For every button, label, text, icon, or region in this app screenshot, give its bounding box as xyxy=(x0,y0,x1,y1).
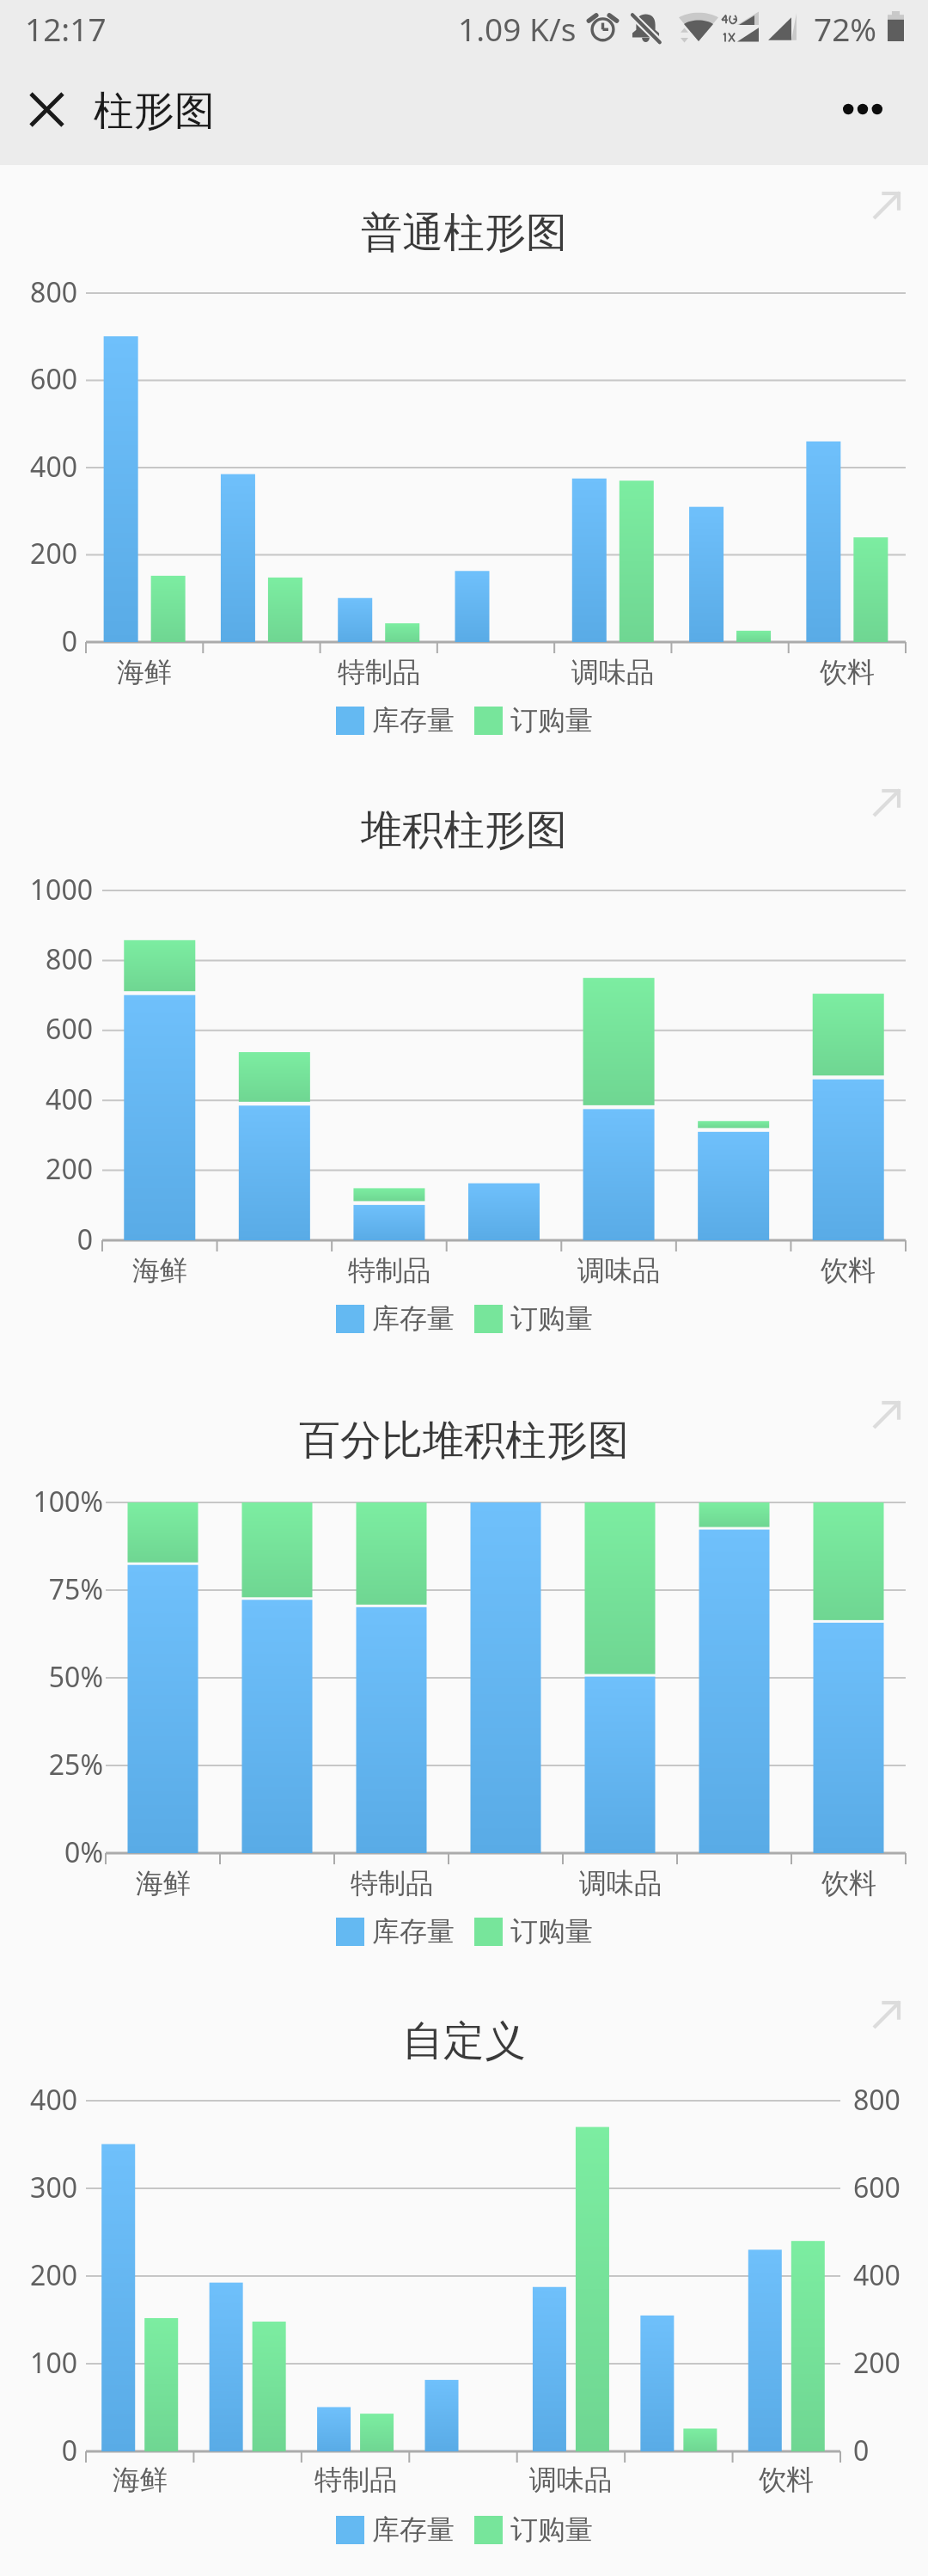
staticText: 1.09 K/s xyxy=(458,7,577,50)
button[interactable]: Close xyxy=(0,53,93,165)
staticText: 堆积柱形图 xyxy=(0,805,928,856)
staticText: 海鲜 xyxy=(76,655,213,689)
staticText: 库存量 xyxy=(372,2512,455,2547)
button[interactable]: 库存量 xyxy=(336,1914,455,1949)
staticText: 饮料 xyxy=(779,1253,917,1288)
staticText: 库存量 xyxy=(372,703,455,737)
staticText: 0 xyxy=(0,2432,77,2469)
staticText: 订购量 xyxy=(510,2512,593,2547)
staticText: 50% xyxy=(0,1658,103,1696)
staticText: 柱形图 xyxy=(94,86,215,137)
staticText: 200 xyxy=(0,2256,77,2294)
staticText: 300 xyxy=(0,2169,77,2206)
staticText: 0 xyxy=(0,622,77,660)
button[interactable]: 订购量 xyxy=(474,1301,593,1336)
button[interactable]: Expand chart xyxy=(860,775,913,829)
staticText: 400 xyxy=(0,448,77,486)
button[interactable]: 订购量 xyxy=(474,2512,593,2547)
staticText: 200 xyxy=(0,1150,93,1188)
staticText: 饮料 xyxy=(780,1866,918,1900)
staticText: 海鲜 xyxy=(91,1253,229,1288)
staticText: 饮料 xyxy=(778,655,916,689)
staticText: 600 xyxy=(0,360,77,398)
button[interactable]: 库存量 xyxy=(336,703,455,737)
staticText: 25% xyxy=(0,1746,103,1784)
staticText: 800 xyxy=(0,940,93,978)
button[interactable]: More options xyxy=(815,53,911,165)
button[interactable]: 订购量 xyxy=(474,1914,593,1949)
staticText: 特制品 xyxy=(323,1866,461,1900)
staticText: 特制品 xyxy=(310,655,448,689)
staticText: 订购量 xyxy=(510,1301,593,1336)
staticText: 100 xyxy=(0,2344,77,2382)
staticText: 0% xyxy=(0,1833,103,1871)
button[interactable]: 库存量 xyxy=(336,1301,455,1336)
staticText: 600 xyxy=(0,1010,93,1048)
button[interactable]: 库存量 xyxy=(336,2512,455,2547)
staticText: 600 xyxy=(853,2169,928,2206)
staticText: 1000 xyxy=(0,871,93,909)
staticText: 百分比堆积柱形图 xyxy=(0,1415,928,1466)
staticText: 调味品 xyxy=(502,2463,639,2497)
staticText: 200 xyxy=(0,535,77,572)
staticText: 400 xyxy=(0,2081,77,2119)
staticText: 特制品 xyxy=(287,2463,424,2497)
staticText: 海鲜 xyxy=(71,2463,209,2497)
staticText: 特制品 xyxy=(321,1253,458,1288)
button[interactable]: Expand chart xyxy=(860,1387,913,1441)
staticText: 72% xyxy=(814,7,877,50)
staticText: 12:17 xyxy=(25,7,107,50)
staticText: 0 xyxy=(0,1221,93,1258)
staticText: 调味品 xyxy=(552,1866,689,1900)
staticText: 400 xyxy=(0,1080,93,1118)
button[interactable]: Expand chart xyxy=(860,178,913,231)
staticText: 800 xyxy=(0,273,77,311)
staticText: 自定义 xyxy=(0,2016,928,2067)
staticText: 100% xyxy=(0,1483,103,1521)
staticText: 调味品 xyxy=(544,655,681,689)
staticText: 订购量 xyxy=(510,1914,593,1949)
button[interactable]: Expand chart xyxy=(860,1987,913,2041)
staticText: 200 xyxy=(853,2344,928,2382)
staticText: 400 xyxy=(853,2256,928,2294)
staticText: 海鲜 xyxy=(95,1866,232,1900)
staticText: 库存量 xyxy=(372,1914,455,1949)
staticText: 订购量 xyxy=(510,703,593,737)
staticText: 饮料 xyxy=(717,2463,855,2497)
staticText: 普通柱形图 xyxy=(0,207,928,259)
staticText: 800 xyxy=(853,2081,928,2119)
staticText: 调味品 xyxy=(550,1253,687,1288)
staticText: 0 xyxy=(853,2432,928,2469)
staticText: 库存量 xyxy=(372,1301,455,1336)
staticText: 75% xyxy=(0,1570,103,1608)
button[interactable]: 订购量 xyxy=(474,703,593,737)
